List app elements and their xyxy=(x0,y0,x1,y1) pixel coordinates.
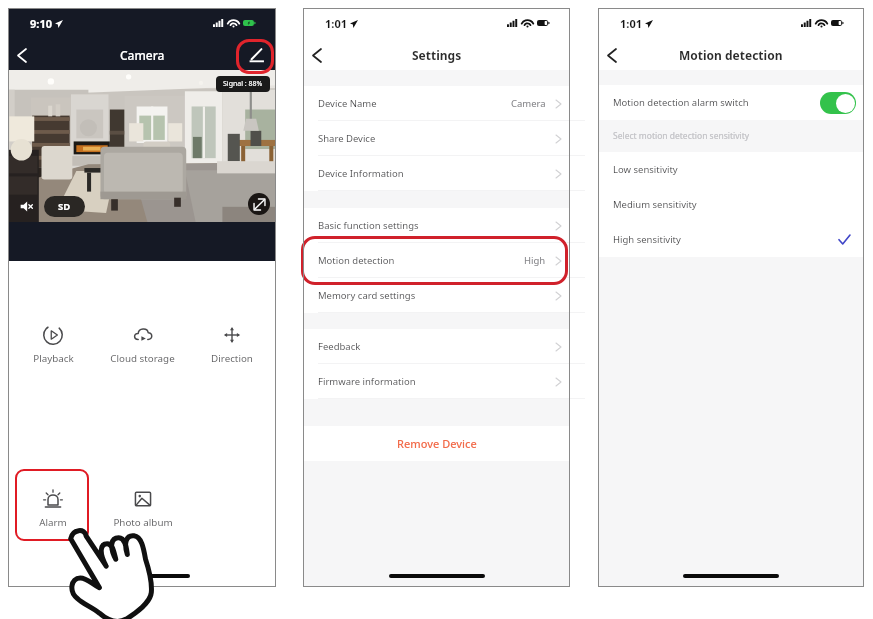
button[interactable]: Back xyxy=(304,42,330,68)
button[interactable]: Playback xyxy=(8,324,98,365)
staticText: Share Device xyxy=(318,132,376,145)
staticText: Feedback xyxy=(318,340,361,353)
staticText: Low sensitivity xyxy=(613,163,678,176)
button[interactable]: Back xyxy=(599,42,625,68)
button[interactable]: Low sensitivity xyxy=(598,152,864,187)
staticText: Device Name xyxy=(318,97,377,110)
button[interactable]: Back xyxy=(9,42,35,68)
button[interactable]: Share Device xyxy=(303,121,570,156)
button[interactable]: Mute xyxy=(20,200,33,213)
staticText: 9:10 xyxy=(30,16,52,31)
staticText: Device Information xyxy=(318,167,404,180)
staticText: Motion detection xyxy=(318,254,395,267)
button[interactable]: Direction xyxy=(187,324,276,365)
staticText: Select motion detection sensitivity xyxy=(613,130,750,142)
staticText: Direction xyxy=(211,352,253,365)
staticText: Camera xyxy=(511,97,546,110)
staticText: Basic function settings xyxy=(318,219,419,232)
button[interactable] xyxy=(820,92,856,114)
button[interactable]: Medium sensitivity xyxy=(598,187,864,222)
staticText: High sensitivity xyxy=(613,233,681,246)
staticText: Settings xyxy=(412,47,462,63)
staticText: Motion detection alarm switch xyxy=(613,96,749,109)
button[interactable]: Photo album xyxy=(98,488,187,529)
button[interactable]: Edit xyxy=(244,43,268,67)
staticText: Camera xyxy=(120,47,165,63)
staticText: Photo album xyxy=(113,516,173,529)
button[interactable]: Basic function settings xyxy=(303,208,570,243)
button[interactable]: High sensitivity xyxy=(598,222,864,257)
button[interactable]: Motion detection alarm switch xyxy=(598,85,864,120)
button[interactable]: Device Information xyxy=(303,156,570,191)
staticText: 1:01 xyxy=(325,16,347,31)
button[interactable]: Alarm xyxy=(8,488,98,529)
button[interactable]: Motion detection xyxy=(303,243,570,278)
staticText: Signal : 88% xyxy=(223,79,263,89)
staticText: Alarm xyxy=(39,516,67,529)
button[interactable]: Feedback xyxy=(303,329,570,364)
button[interactable]: Remove Device xyxy=(303,426,570,461)
button[interactable]: Memory card settings xyxy=(303,278,570,313)
button[interactable]: SD xyxy=(44,196,85,217)
staticText: Playback xyxy=(33,352,74,365)
staticText: High xyxy=(524,254,546,267)
staticText: Cloud storage xyxy=(110,352,175,365)
staticText: Remove Device xyxy=(397,436,477,451)
staticText: Firmware information xyxy=(318,375,416,388)
staticText: Memory card settings xyxy=(318,289,416,302)
staticText: SD xyxy=(58,200,71,213)
staticText: Medium sensitivity xyxy=(613,198,697,211)
staticText: Motion detection xyxy=(679,47,783,63)
button[interactable]: Full screen xyxy=(248,193,270,215)
button[interactable]: Device Name xyxy=(303,86,570,121)
button[interactable]: Firmware information xyxy=(303,364,570,399)
button[interactable]: Cloud storage xyxy=(98,324,187,365)
staticText: 1:01 xyxy=(620,16,642,31)
